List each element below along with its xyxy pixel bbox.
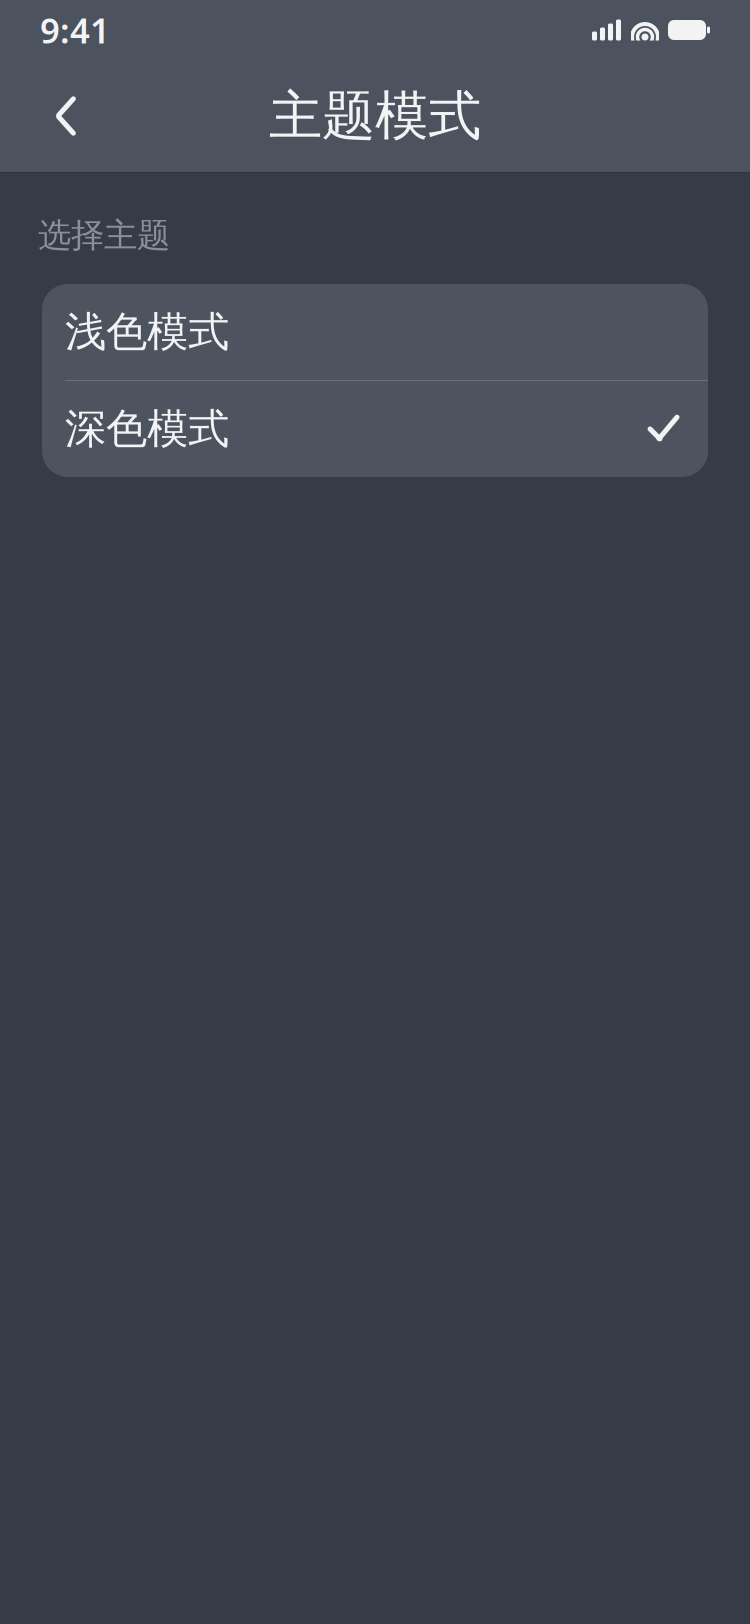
staticText: 主题模式: [269, 83, 481, 149]
staticText: 浅色模式: [65, 307, 229, 357]
button[interactable]: 返回: [22, 72, 110, 160]
staticText: 选择主题: [38, 215, 170, 256]
staticText: 9:41: [40, 7, 110, 53]
staticText: 深色模式: [65, 404, 229, 454]
button[interactable]: 深色模式: [42, 381, 708, 477]
button[interactable]: 浅色模式: [42, 284, 708, 380]
